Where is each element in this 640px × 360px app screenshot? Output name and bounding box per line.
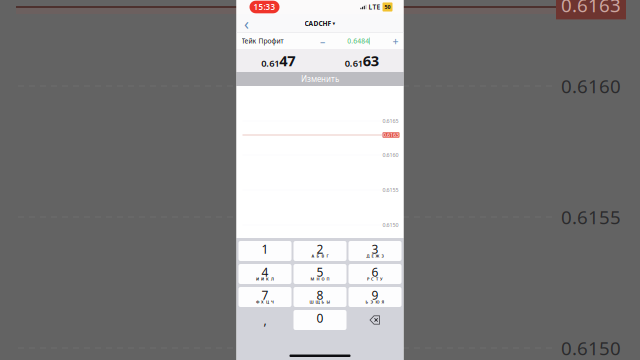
- staticText: 63: [363, 51, 379, 70]
- staticText: ▾: [332, 20, 335, 27]
- staticText: 0.6163: [561, 0, 621, 17]
- staticText: 0.6150: [382, 221, 398, 229]
- staticText: 6: [371, 264, 378, 280]
- button[interactable]: Decrease take profit: [315, 34, 329, 48]
- button[interactable]: 6: [348, 264, 401, 284]
- staticText: 4: [261, 264, 268, 280]
- staticText: 0.6160: [382, 151, 398, 159]
- button[interactable]: Decimal comma: [238, 310, 291, 330]
- staticText: 3: [371, 241, 378, 257]
- button[interactable]: Delete: [348, 310, 401, 330]
- staticText: 1: [261, 241, 268, 257]
- staticText: 5: [316, 264, 323, 280]
- staticText: 0.6163: [383, 131, 399, 139]
- staticText: CADCHF: [304, 19, 331, 28]
- button[interactable]: 0: [293, 310, 346, 330]
- staticText: Д Е Ж З: [366, 253, 383, 259]
- staticText: Ь Э Ю Я: [365, 299, 384, 305]
- button[interactable]: 5: [293, 264, 346, 284]
- staticText: 50: [384, 3, 390, 11]
- staticText: 0.6484: [347, 37, 369, 45]
- staticText: 9: [371, 287, 378, 303]
- staticText: 7: [261, 287, 268, 303]
- staticText: 0.6165: [382, 117, 398, 125]
- staticText: 0: [316, 310, 323, 326]
- staticText: Тейк Профит: [241, 37, 283, 45]
- button[interactable]: 4: [238, 264, 291, 284]
- staticText: 47: [279, 51, 295, 70]
- staticText: ,: [263, 312, 266, 328]
- staticText: 0.61: [261, 57, 279, 69]
- staticText: 15:33: [253, 2, 275, 12]
- staticText: –: [320, 34, 325, 48]
- staticText: 0.6150: [561, 336, 621, 360]
- staticText: Р С Т У: [367, 276, 383, 282]
- staticText: 0.6160: [561, 74, 621, 98]
- button[interactable]: 7: [238, 287, 291, 307]
- staticText: 0.6155: [382, 186, 398, 194]
- staticText: 0.6155: [561, 205, 621, 229]
- staticText: 2: [316, 241, 323, 257]
- staticText: Ф Х Ц Ч: [256, 299, 274, 305]
- button[interactable]: Increase take profit: [388, 34, 402, 48]
- button[interactable]: Изменить: [236, 72, 403, 86]
- staticText: И Й К Л: [256, 276, 274, 282]
- button[interactable]: 1: [238, 241, 291, 261]
- button[interactable]: 3: [348, 241, 401, 261]
- staticText: 0.61: [345, 57, 363, 69]
- staticText: LTE: [368, 3, 380, 11]
- staticText: +: [392, 34, 398, 48]
- button[interactable]: 2: [293, 241, 346, 261]
- button[interactable]: 8: [293, 287, 346, 307]
- staticText: Изменить: [301, 74, 339, 84]
- staticText: 8: [316, 287, 323, 303]
- staticText: М Н О П: [310, 276, 329, 282]
- staticText: ‹: [244, 13, 249, 34]
- staticText: А Б В Г: [311, 253, 328, 259]
- button[interactable]: 9: [348, 287, 401, 307]
- button[interactable]: Back: [239, 15, 253, 31]
- staticText: Ш Щ Ь Ы: [309, 299, 330, 305]
